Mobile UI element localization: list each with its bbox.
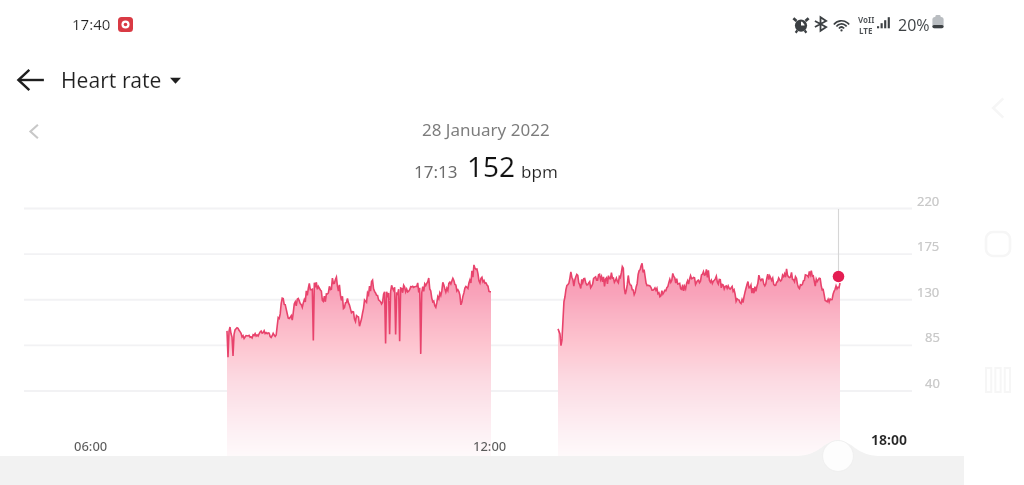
staticText: 28 January 2022 <box>422 118 550 141</box>
staticText: 18:00 <box>871 430 907 449</box>
button[interactable]: Previous day <box>18 115 50 147</box>
staticText: 12:00 <box>473 437 507 455</box>
staticText: 85 <box>925 328 940 346</box>
staticText: 20% <box>898 14 930 36</box>
staticText: 130 <box>917 283 940 301</box>
staticText: 40 <box>925 374 940 392</box>
button[interactable]: Heart rate <box>61 66 181 95</box>
staticText: 175 <box>917 237 940 255</box>
button[interactable]: Home <box>986 232 1010 256</box>
staticText: VoII <box>858 14 875 25</box>
staticText: 17:13 <box>414 160 458 183</box>
staticText: LTE <box>859 25 873 36</box>
staticText: 06:00 <box>74 437 108 455</box>
staticText: bpm <box>521 160 558 183</box>
staticText: 152 <box>467 147 516 185</box>
staticText: 220 <box>917 192 940 210</box>
staticText: Heart rate <box>61 66 162 95</box>
button[interactable]: Home <box>817 436 859 478</box>
button[interactable]: Back <box>6 55 56 105</box>
button[interactable]: Recent apps <box>986 368 1010 392</box>
staticText: 17:40 <box>72 14 111 34</box>
